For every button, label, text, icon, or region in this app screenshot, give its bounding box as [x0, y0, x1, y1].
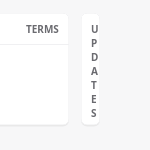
button[interactable]: TERMS — [0, 13, 69, 125]
staticText: TERMS — [26, 22, 59, 36]
other: Card carousel — [0, 13, 150, 125]
button[interactable]: UPDATES — [81, 13, 100, 125]
